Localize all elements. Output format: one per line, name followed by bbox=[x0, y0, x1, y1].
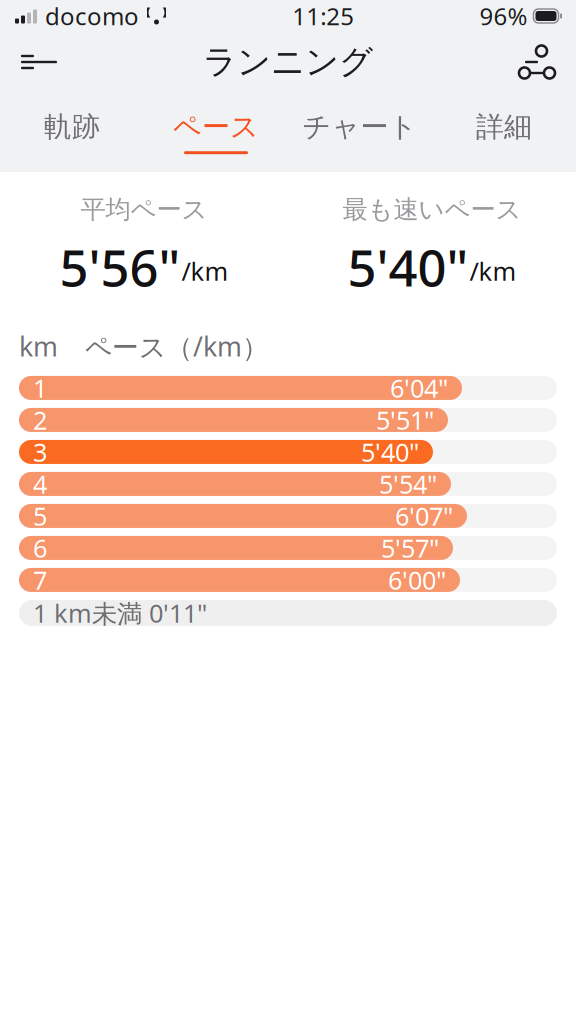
staticText: 最も速いペース bbox=[342, 194, 521, 225]
staticText: 詳細 bbox=[476, 110, 532, 144]
staticText: 6 bbox=[33, 531, 47, 565]
staticText: km ペース（/km） bbox=[19, 328, 269, 364]
button[interactable]: 戻る bbox=[6, 32, 72, 92]
staticText: ペース bbox=[173, 110, 259, 144]
staticText: 5'51" bbox=[376, 403, 434, 437]
staticText: 2 bbox=[33, 403, 47, 437]
staticText: 5'57" bbox=[381, 531, 439, 565]
staticText: 5'40" bbox=[347, 233, 468, 300]
staticText: 3 bbox=[33, 435, 47, 469]
staticText: チャート bbox=[302, 110, 417, 144]
staticText: 平均ペース bbox=[80, 194, 207, 225]
staticText: 5'54" bbox=[379, 467, 437, 501]
staticText: 6'07" bbox=[395, 499, 453, 533]
staticText: 6'00" bbox=[388, 563, 446, 597]
staticText: 1 bbox=[33, 371, 47, 405]
staticText: 96% bbox=[479, 0, 527, 32]
button[interactable]: チャート bbox=[288, 92, 432, 172]
button[interactable]: 共有 bbox=[504, 32, 570, 92]
button[interactable]: 詳細 bbox=[432, 92, 576, 172]
staticText: 5'40" bbox=[361, 435, 419, 469]
staticText: 5'56" bbox=[59, 233, 180, 300]
button[interactable]: 軌跡 bbox=[0, 92, 144, 172]
staticText: 軌跡 bbox=[44, 110, 100, 144]
staticText: 5 bbox=[33, 499, 47, 533]
staticText: /km bbox=[181, 254, 228, 288]
staticText: docomo bbox=[45, 0, 139, 32]
staticText: 6'04" bbox=[390, 371, 448, 405]
staticText: 7 bbox=[33, 563, 47, 597]
staticText: ランニング bbox=[203, 41, 373, 82]
staticText: 4 bbox=[33, 467, 47, 501]
button[interactable]: ペース bbox=[144, 92, 288, 172]
staticText: /km bbox=[469, 254, 516, 288]
staticText: 1 km未満 0'11" bbox=[33, 596, 207, 630]
staticText: 11:25 bbox=[292, 0, 354, 32]
